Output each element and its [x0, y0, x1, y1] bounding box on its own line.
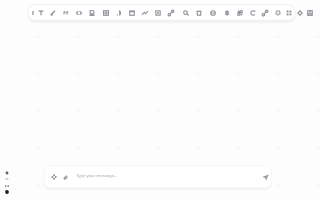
button[interactable]: Tool 23 [304, 4, 316, 21]
button[interactable]: Tool 18 [247, 4, 259, 21]
button[interactable]: Zoom out [3, 175, 11, 183]
button[interactable]: Fit to screen [3, 182, 11, 190]
staticText: Type your message... [76, 173, 118, 179]
button[interactable]: Tool 21 [283, 4, 295, 21]
button[interactable]: Tool 3 [47, 4, 59, 21]
button[interactable]: Tool 2 [35, 4, 47, 21]
button[interactable]: Tool 7 [100, 4, 112, 21]
button[interactable]: Tool 15 [207, 4, 219, 21]
button[interactable]: Tool 12 [165, 4, 177, 21]
button[interactable]: Tool 16 [221, 4, 233, 21]
button[interactable]: Emoji [48, 171, 59, 182]
button[interactable]: Tool 19 [259, 4, 271, 21]
button[interactable]: Tool 5 [73, 4, 85, 21]
button[interactable]: Tool 9 [126, 4, 138, 21]
button[interactable]: Tool 17 [234, 4, 246, 21]
button[interactable]: Zoom in [3, 169, 11, 177]
button[interactable]: Tool 14 [193, 4, 205, 21]
button[interactable]: Attach file [59, 171, 70, 182]
button[interactable]: Tool 11 [152, 4, 164, 21]
button[interactable]: Tool 10 [139, 4, 151, 21]
button[interactable]: Tool 4 [60, 4, 72, 21]
button[interactable]: Tool 1 [27, 4, 39, 21]
button[interactable]: Tool 20 [272, 4, 284, 21]
button[interactable]: Tool 8 [113, 4, 125, 21]
button[interactable]: Tool 22 [294, 4, 306, 21]
button[interactable]: Tool 13 [180, 4, 192, 21]
button[interactable]: Colour [3, 188, 11, 196]
button[interactable]: Tool 6 [86, 4, 98, 21]
button[interactable]: Send [259, 171, 271, 183]
